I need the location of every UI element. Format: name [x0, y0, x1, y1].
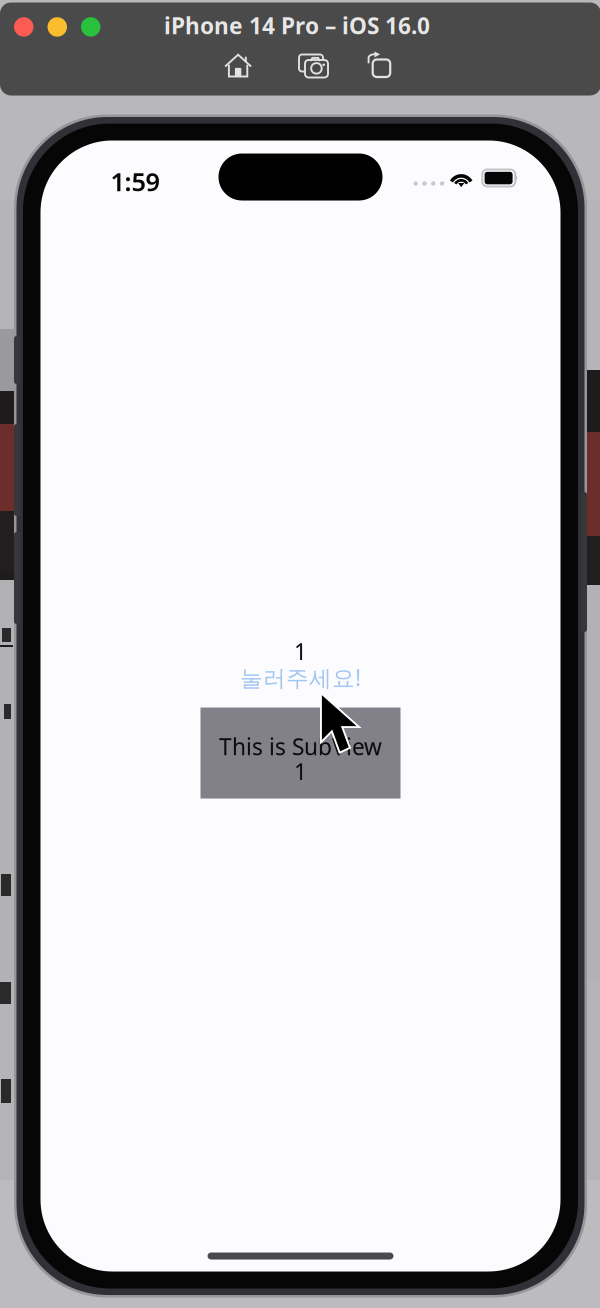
- button[interactable]: 눌러주세요!: [40, 664, 560, 690]
- button[interactable]: Home: [215, 48, 261, 82]
- staticText: 1: [294, 756, 307, 787]
- staticText: 1: [294, 636, 307, 666]
- button[interactable]: Rotate: [356, 47, 402, 81]
- staticText: 눌러주세요!: [240, 662, 361, 692]
- button[interactable]: Screenshot: [291, 49, 337, 83]
- button[interactable]: Minimize window: [47, 17, 67, 37]
- staticText: iPhone 14 Pro – iOS 16.0: [164, 10, 430, 40]
- button[interactable]: Enter full screen: [81, 17, 100, 37]
- staticText: This is SubView: [219, 731, 382, 761]
- button[interactable]: Close window: [14, 17, 33, 37]
- staticText: 1:59: [110, 164, 159, 198]
